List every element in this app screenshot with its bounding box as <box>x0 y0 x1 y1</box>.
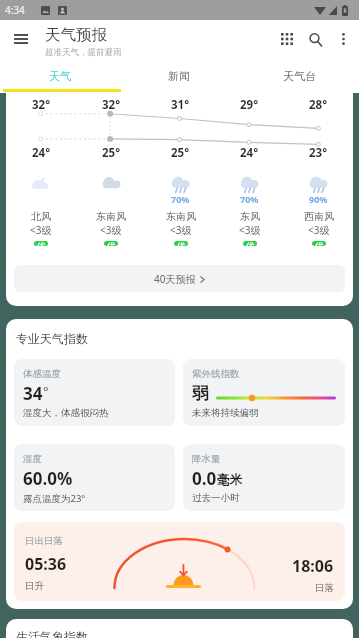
staticText: 生活气象指数 <box>16 629 88 638</box>
button[interactable]: 体感温度 <box>14 359 175 426</box>
button[interactable]: 新闻 <box>119 62 239 89</box>
staticText: 西南风 <box>304 210 334 223</box>
button[interactable]: 40天预报 <box>14 265 345 292</box>
button[interactable]: 东南风 <box>76 176 146 246</box>
staticText: 过去一小时 <box>192 492 240 504</box>
staticText: 优 <box>37 241 46 246</box>
staticText: 天气台 <box>283 69 316 83</box>
staticText: 优 <box>315 241 324 246</box>
staticText: <3级 <box>30 223 52 237</box>
button[interactable]: 天气 <box>0 62 119 89</box>
staticText: 天气预报 <box>45 25 107 45</box>
staticText: ° <box>43 382 49 400</box>
staticText: 湿度大，体感很闷热 <box>23 407 109 419</box>
button[interactable]: More options <box>330 24 356 54</box>
button[interactable]: 70% <box>146 176 215 246</box>
staticText: 4:34 <box>5 3 25 17</box>
staticText: 60.0% <box>23 467 73 489</box>
button[interactable]: 降水量 <box>183 444 345 511</box>
button[interactable]: 日出日落 <box>14 522 345 601</box>
staticText: 紫外线指数 <box>192 368 240 380</box>
staticText: 05:36 <box>25 553 67 575</box>
staticText: 东南风 <box>166 210 196 223</box>
staticText: 弱 <box>192 383 209 404</box>
staticText: 未来将持续偏弱 <box>192 407 259 419</box>
staticText: <3级 <box>239 223 261 237</box>
staticText: 23° <box>309 145 328 161</box>
staticText: 25° <box>102 145 121 161</box>
staticText: 专业天气指数 <box>16 331 88 346</box>
staticText: 优 <box>107 241 116 246</box>
staticText: 24° <box>32 145 51 161</box>
staticText: 18:06 <box>292 555 334 577</box>
staticText: 24° <box>240 145 259 161</box>
staticText: 超准天气，提前避雨 <box>45 47 122 58</box>
staticText: 0.0 <box>192 467 217 489</box>
staticText: 天气 <box>49 69 71 83</box>
staticText: 29° <box>240 97 259 113</box>
staticText: 东南风 <box>96 210 126 223</box>
staticText: 北风 <box>31 210 51 223</box>
staticText: <3级 <box>100 223 122 237</box>
staticText: 日落 <box>315 582 334 594</box>
staticText: 露点温度为23° <box>23 492 86 505</box>
button[interactable]: 70% <box>215 176 284 246</box>
staticText: 32° <box>102 97 121 113</box>
staticText: 28° <box>309 97 328 113</box>
staticText: <3级 <box>170 223 192 237</box>
staticText: 湿度 <box>23 453 42 465</box>
staticText: 体感温度 <box>23 368 61 380</box>
staticText: 70% <box>240 193 259 205</box>
staticText: 31° <box>171 97 190 113</box>
staticText: 日出日落 <box>25 535 63 547</box>
staticText: 优 <box>246 241 255 246</box>
button[interactable]: 北风 <box>6 176 76 246</box>
staticText: 优 <box>177 241 186 246</box>
staticText: 90% <box>309 193 328 205</box>
staticText: 日升 <box>25 580 44 592</box>
staticText: 25° <box>171 145 190 161</box>
button[interactable]: Apps <box>272 24 301 54</box>
button[interactable]: Menu <box>4 22 38 56</box>
staticText: 34 <box>23 382 43 404</box>
staticText: 40天预报 <box>154 272 196 286</box>
staticText: 东风 <box>240 210 260 223</box>
button[interactable]: 湿度 <box>14 444 175 511</box>
button[interactable]: 天气台 <box>239 62 359 89</box>
staticText: <3级 <box>308 223 330 237</box>
staticText: 70% <box>171 193 190 205</box>
staticText: 32° <box>32 97 51 113</box>
button[interactable]: 90% <box>284 176 353 246</box>
staticText: 新闻 <box>168 69 190 83</box>
button[interactable]: 紫外线指数 <box>183 359 345 426</box>
button[interactable]: Search <box>301 24 330 54</box>
staticText: 降水量 <box>192 453 221 465</box>
staticText: 毫米 <box>217 472 242 488</box>
